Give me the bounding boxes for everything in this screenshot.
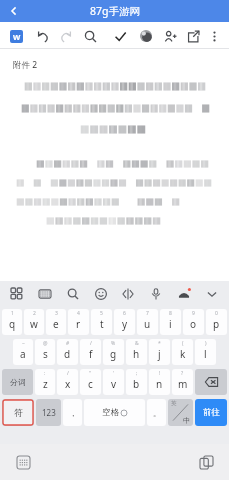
staticText: & [135, 340, 139, 347]
staticText: 9 [192, 310, 195, 317]
button[interactable]: 分词 [2, 369, 33, 395]
button[interactable]: 附件 2 [0, 49, 229, 281]
staticText: # [66, 340, 70, 347]
button[interactable]: # [57, 339, 78, 365]
staticText: a [20, 347, 26, 361]
staticText: 英 [171, 400, 177, 407]
staticText: @ [43, 340, 48, 347]
button[interactable]: Apps [6, 283, 28, 305]
staticText: h [133, 347, 140, 361]
staticText: 分词 [10, 377, 26, 387]
button[interactable]: Back [0, 0, 28, 22]
button[interactable]: ' [103, 369, 124, 395]
button[interactable]: & [126, 339, 147, 365]
staticText: z [43, 377, 48, 391]
button[interactable]: ) [195, 339, 216, 365]
button[interactable]: More options [205, 25, 224, 47]
button[interactable]: ! [149, 369, 170, 395]
staticText: 3 [55, 310, 58, 317]
button[interactable]: @ [35, 339, 55, 365]
staticText: s [43, 347, 48, 361]
button[interactable]: 9 [183, 309, 204, 335]
button[interactable]: ， [63, 399, 82, 426]
staticText: 6 [123, 310, 126, 317]
staticText: x [65, 377, 71, 391]
button[interactable]: Recent apps [195, 451, 217, 473]
staticText: w [30, 317, 38, 331]
staticText: ) [205, 340, 207, 347]
staticText: g [110, 347, 117, 361]
staticText: 1 [11, 310, 14, 317]
staticText: 7 [146, 310, 149, 317]
staticText: W [13, 32, 21, 42]
staticText: u [144, 317, 151, 331]
button[interactable]: 6 [114, 309, 135, 335]
staticText: 87g手游网 [90, 4, 140, 18]
button[interactable]: * [149, 339, 170, 365]
button[interactable]: 空格 [84, 399, 145, 426]
button[interactable]: 3 [46, 309, 66, 335]
button[interactable]: ; [126, 369, 147, 395]
staticText: ? [181, 370, 184, 377]
button[interactable]: " [80, 369, 101, 395]
staticText: k [180, 347, 186, 361]
staticText: 5 [100, 310, 103, 317]
staticText: 。 [153, 408, 161, 418]
button[interactable]: Search [62, 283, 84, 305]
staticText: o [190, 317, 197, 331]
button[interactable]: 4 [68, 309, 89, 335]
button[interactable]: WPS [5, 25, 27, 47]
button[interactable]: Account [135, 25, 157, 47]
staticText: ; [136, 370, 138, 377]
button[interactable]: Add collaborator [161, 25, 180, 47]
staticText: y [122, 317, 128, 331]
button[interactable]: ? [172, 369, 193, 395]
button[interactable]: : [35, 369, 55, 395]
staticText: c [88, 377, 93, 391]
staticText: v [111, 377, 117, 391]
button[interactable]: ~ [13, 339, 33, 365]
staticText: j [158, 347, 161, 361]
staticText: 符 [14, 407, 23, 418]
button[interactable]: Emoji [90, 283, 112, 305]
staticText: f [89, 347, 93, 361]
button[interactable]: Undo [33, 25, 52, 47]
staticText: 2 [33, 310, 36, 317]
button[interactable]: Hide keyboard [201, 283, 223, 305]
staticText: ， [69, 408, 77, 418]
button[interactable]: / [80, 339, 101, 365]
staticText: 空格 [102, 407, 119, 418]
button[interactable]: 123 [36, 399, 61, 426]
button[interactable]: 前往 [195, 399, 227, 426]
staticText: 0 [215, 310, 218, 317]
button[interactable]: 1 [2, 309, 22, 335]
button[interactable]: Switch Chinese English [168, 399, 193, 426]
button[interactable]: ( [172, 339, 193, 365]
button[interactable]: Backspace [195, 369, 227, 395]
button[interactable]: Done [111, 25, 130, 47]
staticText: r [76, 317, 81, 331]
staticText: ( [182, 340, 184, 347]
button[interactable]: / [57, 369, 78, 395]
button[interactable]: 5 [91, 309, 112, 335]
button[interactable]: % [103, 339, 124, 365]
button[interactable]: 7 [137, 309, 158, 335]
button[interactable]: 。 [147, 399, 166, 426]
button[interactable]: Voice input [145, 283, 167, 305]
staticText: 123 [42, 407, 56, 418]
staticText: ! [159, 370, 161, 377]
button[interactable]: Theme [173, 283, 195, 305]
staticText: 4 [77, 310, 80, 317]
button[interactable]: Share [184, 25, 203, 47]
button[interactable]: Redo [57, 25, 76, 47]
button[interactable]: 2 [24, 309, 44, 335]
button[interactable]: Split input [117, 283, 139, 305]
staticText: d [64, 347, 71, 361]
staticText: 中 [183, 416, 190, 425]
button[interactable]: Keyboard layout [34, 283, 56, 305]
button[interactable]: Search [81, 25, 100, 47]
button[interactable]: 符 [2, 399, 34, 426]
button[interactable]: Keyboard [12, 451, 34, 473]
button[interactable]: 0 [206, 309, 227, 335]
button[interactable]: 8 [160, 309, 181, 335]
